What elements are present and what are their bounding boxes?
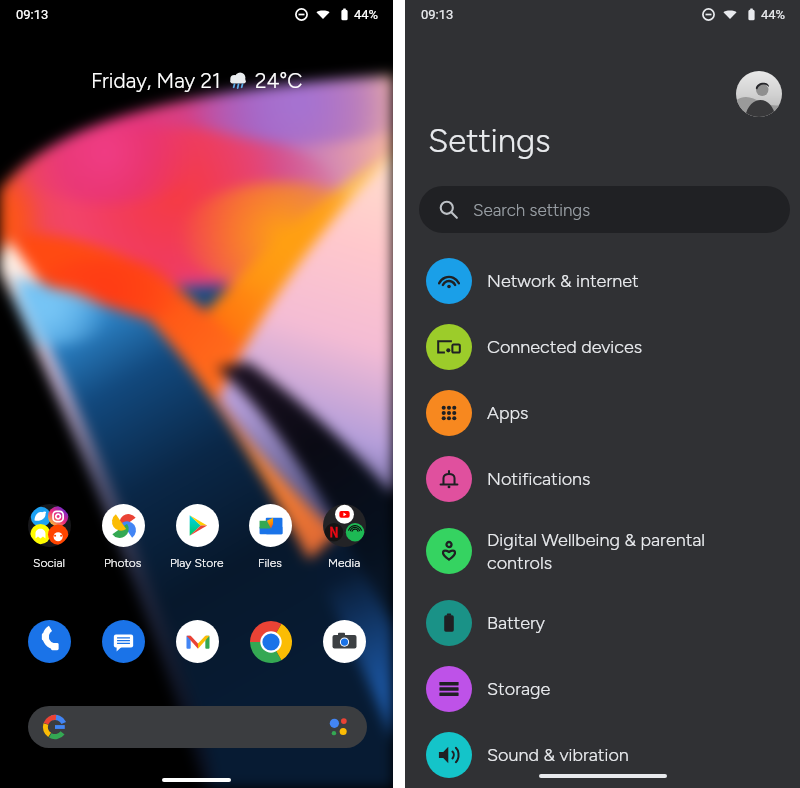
- staticText: Battery: [487, 612, 545, 634]
- button[interactable]: Messages: [94, 620, 152, 663]
- staticText: Connected devices: [487, 336, 643, 358]
- staticText: Digital Wellbeing & parental controls: [487, 529, 706, 574]
- button[interactable]: Account: [736, 71, 782, 117]
- button[interactable]: Connected devices: [405, 314, 800, 380]
- button[interactable]: Phone: [20, 620, 78, 663]
- button[interactable]: Apps: [405, 380, 800, 446]
- button[interactable]: Media: [315, 504, 373, 570]
- button[interactable]: Search settings: [419, 186, 790, 233]
- staticText: Storage: [487, 678, 551, 700]
- button[interactable]: Storage: [405, 656, 800, 722]
- button[interactable]: Battery: [405, 590, 800, 656]
- staticText: 44%: [761, 7, 786, 22]
- button[interactable]: Photos: [94, 504, 152, 570]
- button[interactable]: Camera: [315, 620, 373, 663]
- staticText: Notifications: [487, 468, 591, 490]
- staticText: Files: [258, 556, 282, 570]
- staticText: Settings: [428, 121, 551, 161]
- button[interactable]: Digital Wellbeing & parental controls: [405, 512, 800, 590]
- staticText: Sound & vibration: [487, 744, 629, 766]
- button[interactable]: Sound & vibration: [405, 722, 800, 788]
- button[interactable]: Social: [20, 504, 78, 570]
- staticText: Play Store: [170, 556, 224, 570]
- button[interactable]: Notifications: [405, 446, 800, 512]
- button[interactable]: Chrome: [241, 620, 299, 663]
- staticText: 24°C: [255, 68, 303, 93]
- staticText: Network & internet: [487, 270, 639, 292]
- button[interactable]: Files: [241, 504, 299, 570]
- button[interactable]: Gmail: [168, 620, 226, 663]
- staticText: Friday, May 21: [91, 68, 221, 93]
- staticText: Social: [33, 556, 65, 570]
- staticText: 09:13: [16, 7, 49, 22]
- button[interactable]: Network & internet: [405, 248, 800, 314]
- staticText: Photos: [104, 556, 142, 570]
- staticText: Apps: [487, 402, 529, 424]
- staticText: Search settings: [473, 200, 591, 220]
- staticText: 44%: [354, 7, 379, 22]
- button[interactable]: Play Store: [168, 504, 226, 570]
- staticText: Media: [328, 556, 361, 570]
- button[interactable]: [28, 706, 367, 748]
- staticText: 09:13: [421, 7, 454, 22]
